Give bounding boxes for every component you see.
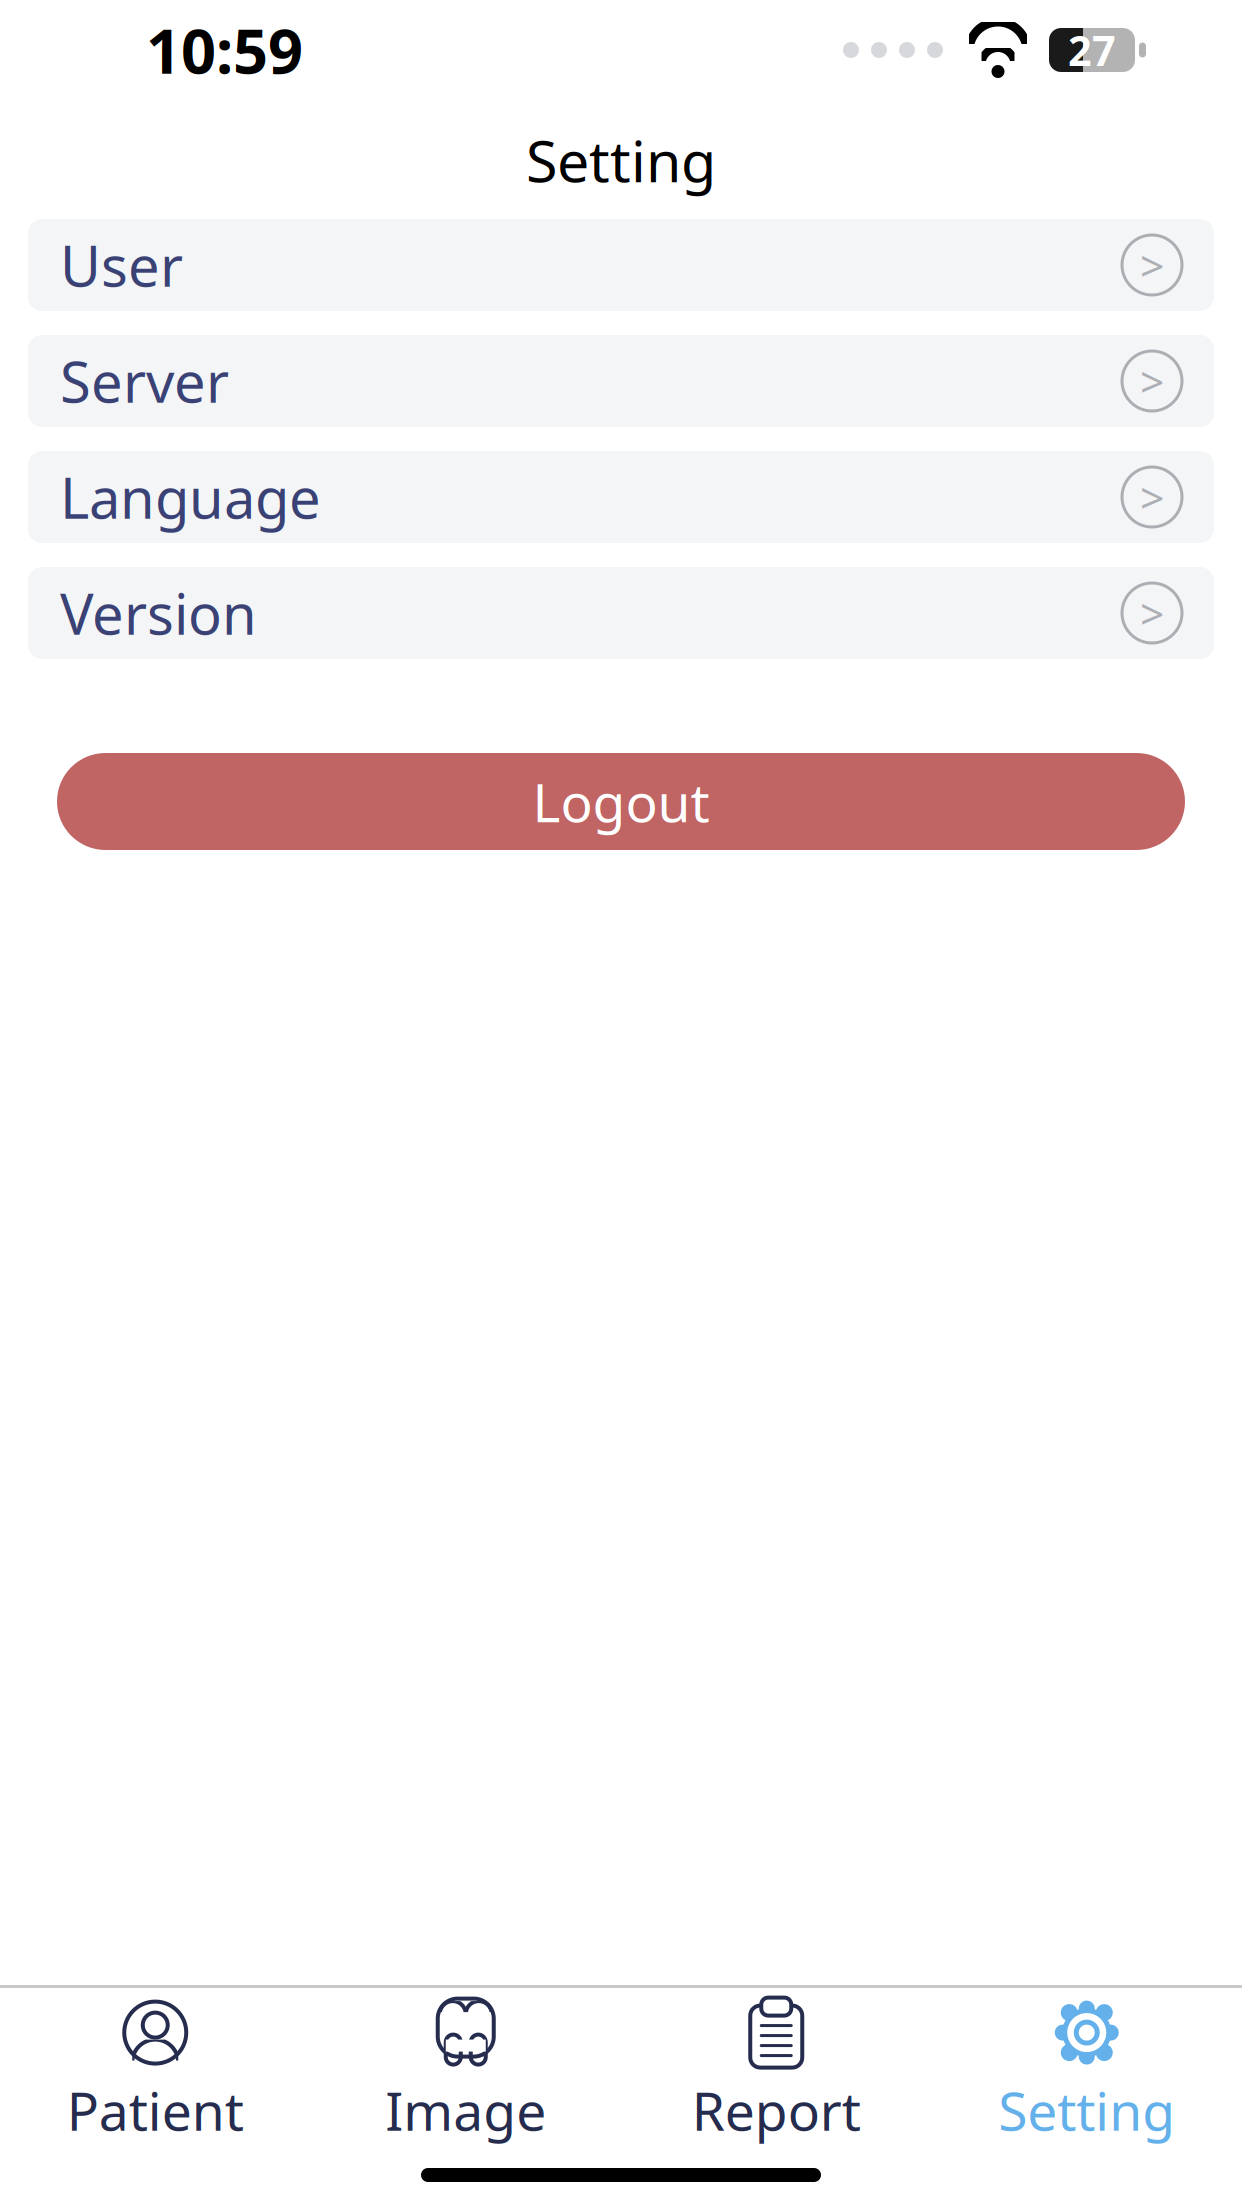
staticText: Patient	[67, 2075, 244, 2145]
staticText: Version	[60, 576, 257, 650]
button[interactable]: Version	[28, 567, 1214, 659]
button[interactable]: Server	[28, 335, 1214, 427]
staticText: 27	[1068, 23, 1116, 77]
button[interactable]: Logout	[57, 753, 1185, 850]
staticText: >	[1140, 469, 1164, 525]
staticText: Server	[60, 344, 229, 418]
button[interactable]: Image	[310, 2002, 621, 2142]
staticText: >	[1140, 353, 1164, 409]
button[interactable]: Report	[621, 2002, 931, 2142]
button[interactable]: Patient	[0, 2002, 310, 2142]
staticText: User	[60, 228, 183, 302]
staticText: Report	[692, 2075, 861, 2145]
button[interactable]: Setting	[931, 2002, 1242, 2142]
staticText: >	[1140, 585, 1164, 641]
staticText: Image	[385, 2075, 546, 2145]
button[interactable]: Language	[28, 451, 1214, 543]
button[interactable]: User	[28, 219, 1214, 311]
staticText: >	[1140, 237, 1164, 293]
staticText: 10:59	[146, 9, 303, 91]
staticText: Setting	[998, 2075, 1175, 2145]
staticText: Language	[60, 460, 321, 534]
staticText: Setting	[526, 122, 716, 198]
staticText: Logout	[532, 766, 709, 837]
